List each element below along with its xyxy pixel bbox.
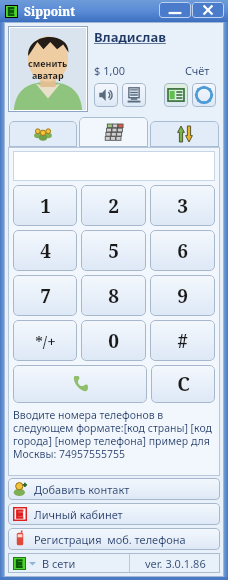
button[interactable]: 4 — [13, 230, 77, 271]
button[interactable]: History — [150, 121, 219, 147]
button[interactable]: Change avatar — [8, 26, 88, 112]
button[interactable]: # — [150, 320, 215, 361]
button[interactable]: 9 — [150, 275, 215, 316]
staticText: сменить — [28, 57, 68, 69]
button[interactable]: Регистрация моб. телефона — [8, 528, 220, 550]
button[interactable] — [13, 151, 215, 181]
button[interactable]: 8 — [81, 275, 146, 316]
staticText: $ 1,00 — [94, 63, 125, 78]
staticText: ver. 3.0.1.86 — [145, 556, 206, 571]
button[interactable]: 5 — [81, 230, 146, 271]
staticText: 8 — [108, 283, 119, 309]
button[interactable]: Keypad settings — [122, 83, 146, 107]
button[interactable]: В сети — [8, 553, 129, 573]
button[interactable]: 2 — [81, 185, 146, 226]
staticText: аватар — [32, 69, 64, 81]
staticText: # — [177, 328, 188, 354]
button[interactable]: 1 — [13, 185, 77, 226]
staticText: 1 — [40, 193, 51, 219]
staticText: Счёт — [185, 63, 210, 78]
button[interactable]: 0 — [81, 320, 146, 361]
button[interactable]: Account card — [164, 83, 188, 107]
button[interactable]: 6 — [150, 230, 215, 271]
staticText: Вводите номера телефонов в следующем фор… — [13, 408, 215, 461]
button[interactable]: 3 — [150, 185, 215, 226]
button[interactable]: Volume — [94, 83, 118, 107]
button[interactable]: Keypad — [79, 117, 148, 147]
button[interactable]: Call — [13, 365, 147, 403]
button[interactable]: Settings — [192, 83, 216, 107]
staticText: 4 — [40, 238, 51, 264]
button[interactable]: Личный кабинет — [8, 503, 220, 525]
staticText: 0 — [108, 328, 119, 354]
staticText: 2 — [108, 193, 119, 219]
staticText: */+ — [35, 331, 56, 351]
button[interactable]: */+ — [13, 320, 77, 361]
staticText: 7 — [40, 283, 51, 309]
staticText: 6 — [177, 238, 188, 264]
button[interactable]: Close — [192, 2, 224, 18]
staticText: Регистрация моб. телефона — [34, 532, 186, 547]
staticText: C — [177, 371, 190, 397]
button[interactable]: Добавить контакт — [8, 478, 220, 500]
button[interactable]: Minimize — [159, 2, 191, 18]
staticText: Личный кабинет — [34, 507, 123, 522]
staticText: 5 — [108, 238, 119, 264]
staticText: 3 — [177, 193, 188, 219]
staticText: 9 — [177, 283, 188, 309]
button[interactable]: Contacts — [9, 121, 77, 147]
button[interactable]: C — [151, 365, 215, 403]
staticText: Sippoint — [24, 3, 76, 19]
staticText: В сети — [42, 556, 76, 571]
button[interactable]: Владислав — [94, 28, 166, 46]
button[interactable]: 7 — [13, 275, 77, 316]
staticText: Добавить контакт — [34, 482, 130, 497]
